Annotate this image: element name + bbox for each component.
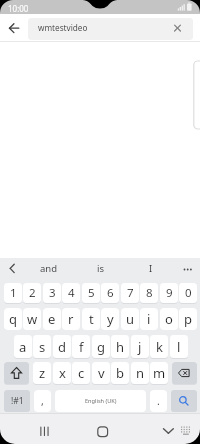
button[interactable]: n: [131, 362, 149, 384]
staticText: wmtestvideo: [38, 22, 88, 33]
button[interactable]: k: [150, 335, 168, 358]
staticText: !#1: [11, 395, 24, 407]
button[interactable]: 9: [160, 283, 178, 303]
button[interactable]: [30, 417, 60, 443]
staticText: y: [107, 310, 114, 328]
button[interactable]: t: [82, 308, 100, 330]
staticText: k: [156, 338, 163, 356]
staticText: h: [116, 338, 125, 356]
button[interactable]: 4: [62, 283, 80, 303]
button[interactable]: h: [111, 335, 129, 358]
staticText: is: [97, 262, 105, 275]
button[interactable]: 1: [4, 283, 22, 303]
staticText: 3: [49, 285, 56, 301]
button[interactable]: c: [72, 362, 90, 384]
staticText: d: [58, 338, 66, 356]
button[interactable]: v: [92, 362, 110, 384]
button[interactable]: [2, 259, 20, 279]
staticText: 6: [107, 285, 114, 301]
staticText: i: [147, 310, 151, 328]
button[interactable]: d: [53, 335, 71, 358]
staticText: r: [68, 310, 74, 328]
button[interactable]: 7: [121, 283, 139, 303]
button[interactable]: m: [150, 362, 168, 384]
button[interactable]: z: [33, 362, 51, 384]
button[interactable]: q: [4, 308, 22, 330]
staticText: p: [184, 310, 192, 328]
button[interactable]: p: [179, 308, 197, 330]
button[interactable]: r: [62, 308, 80, 330]
staticText: g: [97, 338, 105, 356]
staticText: 9: [166, 285, 173, 301]
staticText: z: [39, 364, 46, 382]
staticText: English (UK): [85, 397, 117, 405]
button[interactable]: I: [135, 258, 167, 279]
staticText: s: [39, 338, 46, 356]
staticText: and: [40, 262, 58, 275]
staticText: x: [59, 364, 66, 382]
staticText: u: [126, 310, 135, 328]
button[interactable]: [88, 417, 118, 443]
staticText: w: [27, 310, 38, 328]
staticText: l: [177, 338, 181, 356]
staticText: a: [19, 338, 27, 356]
button[interactable]: s: [33, 335, 51, 358]
button[interactable]: f: [72, 335, 90, 358]
staticText: I: [149, 262, 153, 275]
button[interactable]: [171, 390, 197, 412]
staticText: f: [79, 338, 84, 356]
staticText: e: [48, 310, 56, 328]
button[interactable]: and: [33, 258, 65, 279]
button[interactable]: 2: [23, 283, 41, 303]
staticText: 2: [29, 285, 36, 301]
button[interactable]: ,: [34, 390, 51, 412]
button[interactable]: 5: [82, 283, 100, 303]
button[interactable]: [4, 362, 29, 384]
staticText: v: [98, 364, 105, 382]
staticText: q: [9, 310, 17, 328]
button[interactable]: 3: [43, 283, 61, 303]
button[interactable]: o: [160, 308, 178, 330]
button[interactable]: 0: [179, 283, 197, 303]
staticText: 5: [88, 285, 95, 301]
staticText: n: [136, 364, 145, 382]
button[interactable]: English (UK): [55, 390, 146, 412]
staticText: 0: [185, 285, 192, 301]
staticText: o: [165, 310, 173, 328]
staticText: j: [138, 338, 142, 356]
button[interactable]: l: [170, 335, 188, 358]
staticText: b: [116, 364, 124, 382]
button[interactable]: [172, 362, 197, 384]
button[interactable]: e: [43, 308, 61, 330]
button[interactable]: [168, 19, 186, 37]
button[interactable]: a: [14, 335, 32, 358]
button[interactable]: [4, 18, 24, 38]
staticText: m: [153, 364, 166, 382]
staticText: .: [157, 394, 160, 408]
button[interactable]: w: [23, 308, 41, 330]
button[interactable]: .: [150, 390, 167, 412]
button[interactable]: [28, 18, 193, 40]
button[interactable]: 6: [101, 283, 119, 303]
button[interactable]: [154, 417, 184, 443]
staticText: 8: [146, 285, 153, 301]
staticText: c: [78, 364, 85, 382]
staticText: t: [89, 310, 94, 328]
button[interactable]: j: [131, 335, 149, 358]
staticText: 1: [10, 285, 17, 301]
button[interactable]: b: [111, 362, 129, 384]
staticText: 4: [68, 285, 75, 301]
button[interactable]: 8: [140, 283, 158, 303]
staticText: 10:00: [8, 3, 29, 14]
button[interactable]: u: [121, 308, 139, 330]
button[interactable]: y: [101, 308, 119, 330]
button[interactable]: i: [140, 308, 158, 330]
staticText: ,: [41, 394, 44, 408]
button[interactable]: x: [53, 362, 71, 384]
button[interactable]: !#1: [4, 390, 30, 412]
staticText: 7: [127, 285, 134, 301]
button[interactable]: g: [92, 335, 110, 358]
button[interactable]: is: [85, 258, 117, 279]
